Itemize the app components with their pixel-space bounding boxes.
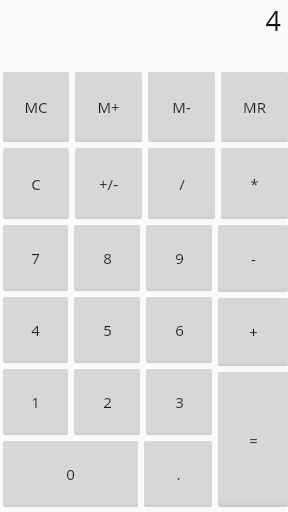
staticText: 2 — [103, 392, 112, 412]
staticText: = — [249, 430, 258, 450]
button[interactable]: + — [218, 298, 288, 366]
button[interactable]: 5 — [74, 297, 140, 363]
staticText: . — [176, 464, 181, 484]
button[interactable]: 8 — [74, 225, 140, 291]
staticText: 1 — [31, 392, 40, 412]
button[interactable]: = — [218, 372, 288, 507]
button[interactable]: M+ — [75, 72, 142, 142]
staticText: 9 — [175, 248, 184, 268]
staticText: 5 — [103, 320, 112, 340]
staticText: + — [249, 322, 258, 342]
button[interactable]: C — [3, 148, 69, 219]
staticText: 7 — [31, 248, 40, 268]
staticText: MR — [243, 97, 266, 117]
button[interactable]: 7 — [3, 225, 68, 291]
button[interactable]: . — [144, 441, 212, 507]
staticText: M- — [172, 97, 191, 117]
staticText: C — [31, 174, 41, 194]
button[interactable]: 2 — [74, 369, 140, 435]
staticText: MC — [24, 97, 48, 117]
button[interactable]: 4 — [3, 297, 68, 363]
staticText: 4 — [265, 2, 281, 39]
staticText: 0 — [66, 464, 75, 484]
button[interactable]: 6 — [146, 297, 212, 363]
button[interactable]: 0 — [3, 441, 138, 507]
staticText: +/- — [99, 174, 118, 194]
button[interactable]: +/- — [75, 148, 142, 219]
staticText: 8 — [103, 248, 112, 268]
button[interactable]: 3 — [146, 369, 212, 435]
button[interactable]: MC — [3, 72, 69, 142]
staticText: M+ — [97, 97, 120, 117]
button[interactable]: / — [148, 148, 215, 219]
staticText: - — [251, 249, 256, 269]
button[interactable]: MR — [221, 72, 288, 142]
staticText: 3 — [175, 392, 184, 412]
button[interactable]: M- — [148, 72, 215, 142]
staticText: * — [250, 174, 259, 194]
button[interactable]: 9 — [146, 225, 212, 291]
staticText: / — [179, 174, 185, 194]
staticText: 4 — [31, 320, 40, 340]
button[interactable]: - — [218, 225, 288, 292]
staticText: 6 — [175, 320, 184, 340]
button[interactable]: * — [221, 148, 288, 219]
button[interactable]: 1 — [3, 369, 68, 435]
